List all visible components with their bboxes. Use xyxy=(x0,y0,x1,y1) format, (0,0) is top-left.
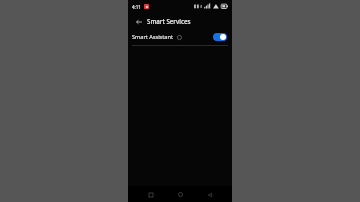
button[interactable]: Back xyxy=(203,188,216,201)
staticText: 4:11 xyxy=(132,4,141,10)
button[interactable]: Info xyxy=(176,34,183,41)
staticText: Smart Services xyxy=(147,17,191,25)
button[interactable]: Home xyxy=(174,188,187,201)
button[interactable]: Smart Assistant xyxy=(128,29,232,45)
button[interactable]: Recent apps xyxy=(144,188,157,201)
button[interactable]: Smart Assistant toggle xyxy=(213,33,227,41)
button[interactable]: Back xyxy=(133,16,144,27)
staticText: Smart Assistant xyxy=(132,33,173,41)
